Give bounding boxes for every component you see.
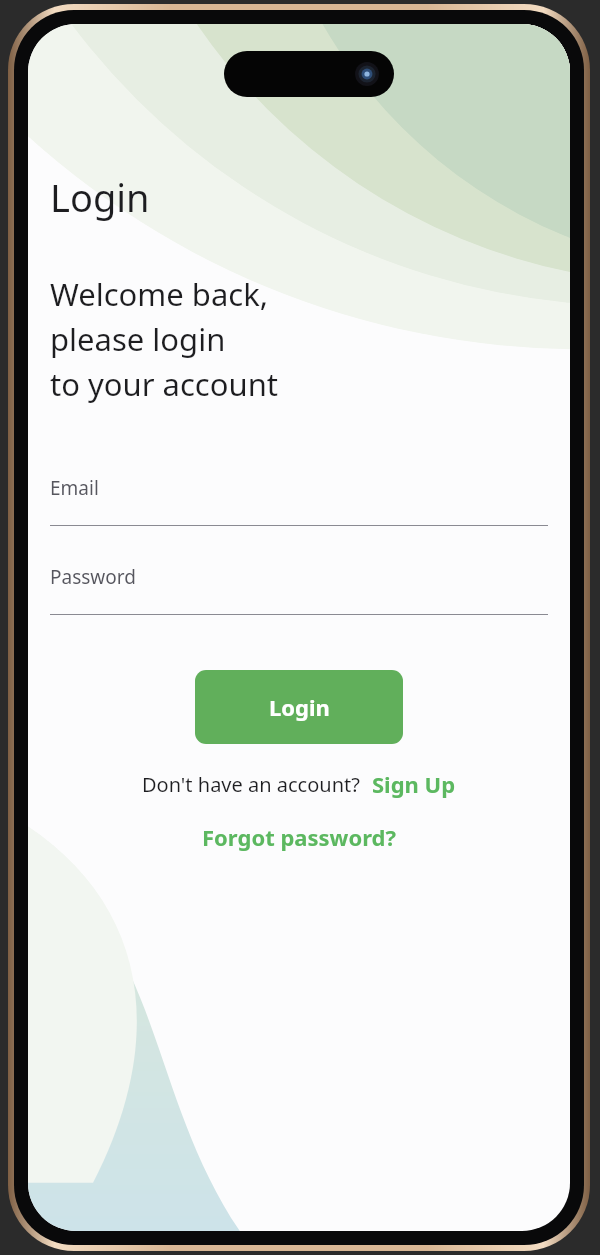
staticText: Login [269,692,330,722]
button[interactable]: Login [195,670,403,744]
staticText: Sign Up [372,769,456,799]
staticText: Forgot password? [202,822,396,852]
staticText: Email [50,475,99,501]
button[interactable]: Sign Up [372,769,456,799]
staticText: Password [50,564,136,590]
staticText: Don't have an account? [142,771,360,798]
button[interactable]: Forgot password? [202,822,396,852]
staticText: Login [50,171,150,223]
button[interactable]: Email input field [50,475,548,526]
staticText: Welcome back, please login to your accou… [50,273,279,405]
button[interactable]: Password input field [50,564,548,615]
